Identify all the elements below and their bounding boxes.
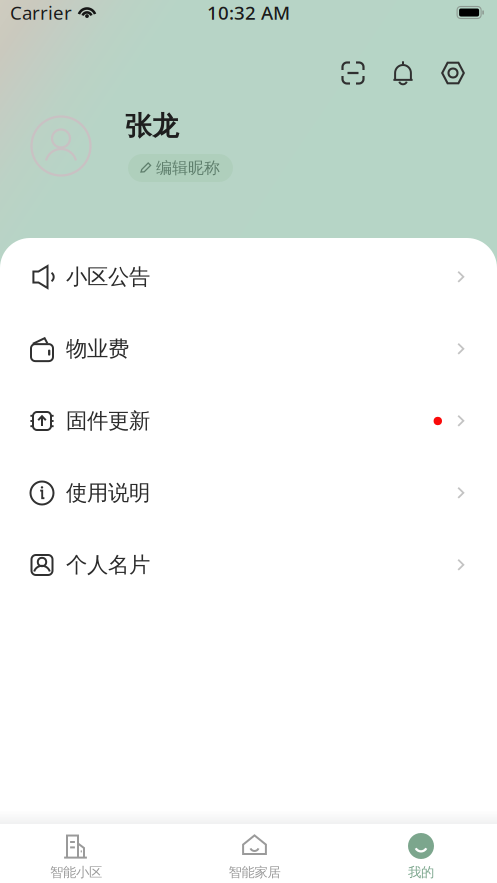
staticText: 个人名片 [66,552,150,578]
staticText: 物业费 [66,336,129,362]
button[interactable]: 物业费 [0,313,497,385]
staticText: 编辑昵称 [156,158,220,178]
staticText: 张龙 [125,110,179,142]
button[interactable]: 个人名片 [0,529,497,601]
staticText: 固件更新 [66,408,150,434]
button[interactable]: Settings [428,51,478,95]
button[interactable]: 使用说明 [0,457,497,529]
staticText: 智能家居 [228,864,280,880]
staticText: 使用说明 [66,480,150,506]
button[interactable]: Notifications [378,51,428,95]
button[interactable]: 智能家居 [208,833,300,880]
staticText: 10:32 AM [207,0,290,25]
staticText: Carrier [10,0,72,25]
staticText: 小区公告 [66,264,150,290]
staticText: 我的 [408,864,434,880]
button[interactable]: 智能小区 [30,833,122,880]
button[interactable]: 小区公告 [0,241,497,313]
staticText: 智能小区 [50,864,102,880]
button[interactable]: Scan [328,51,378,95]
button[interactable]: 我的 [375,833,467,880]
button[interactable]: 固件更新 [0,385,497,457]
button[interactable]: 编辑昵称 [128,154,233,182]
